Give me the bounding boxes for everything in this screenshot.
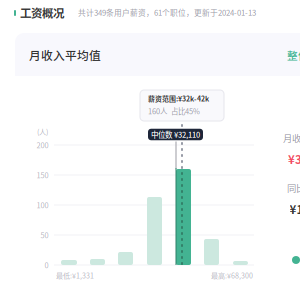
staticText: 月收入中位数 [283,131,300,145]
staticText: 最低:¥1,331 [56,270,94,281]
staticText: 中位数 ¥32,110 [151,129,200,140]
staticText: 工资概况 [20,4,64,21]
staticText: 0 [44,260,48,270]
staticText: 50 [40,230,48,240]
staticText: (人) [37,126,48,137]
staticText: ¥32,110 [288,151,300,167]
staticText: 200 [36,140,48,150]
staticText: 160人 占比45% [148,106,200,116]
staticText: 薪资范围:¥32k-42k [148,93,209,103]
staticText: 月收入平均值 [29,46,101,63]
staticText: 150 [36,170,48,180]
staticText: 最高:¥68,300 [211,270,253,281]
staticText: 同比增长 [287,181,300,195]
staticText: ¥1,204 [289,201,300,217]
staticText: 100 [36,200,48,210]
staticText: 共计349条用户薪资，61个职位，更新于2024-01-13 [78,7,256,18]
staticText: 整体 [287,47,300,63]
